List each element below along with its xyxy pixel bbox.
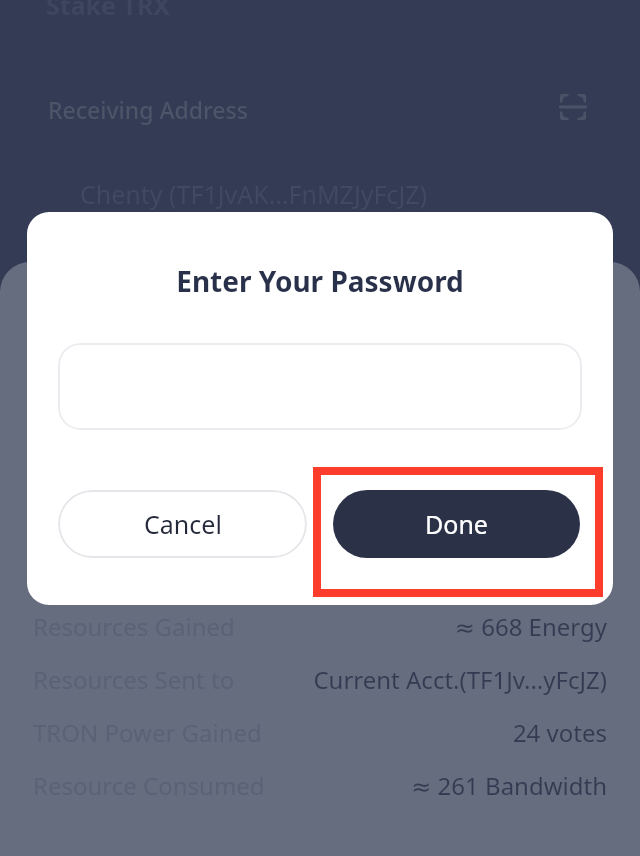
staticText: Current Acct.(TF1Jv...yFcJZ) (0, 663, 607, 696)
staticText: Chenty (TF1JvAK…FnMZJyFcJZ) (80, 177, 428, 211)
staticText: Stake TRX (46, 0, 171, 22)
staticText: Enter Your Password (27, 262, 613, 300)
button[interactable]: Scan QR code (551, 85, 595, 129)
staticText: Resources Gained (33, 610, 235, 643)
staticText: 24 votes (0, 716, 607, 749)
staticText: ≈ 668 Energy (0, 610, 607, 643)
staticText: Cancel (144, 507, 222, 541)
staticText: Resources Sent to (33, 663, 235, 696)
button[interactable]: Done (333, 490, 580, 558)
staticText: TRON Power Gained (33, 716, 262, 749)
staticText: Done (425, 507, 488, 541)
button[interactable]: Cancel (58, 490, 307, 558)
button[interactable]: Password input field (58, 343, 582, 430)
staticText: Resource Consumed (33, 769, 265, 802)
staticText: ≈ 261 Bandwidth (0, 769, 607, 802)
staticText: Receiving Address (48, 94, 248, 125)
